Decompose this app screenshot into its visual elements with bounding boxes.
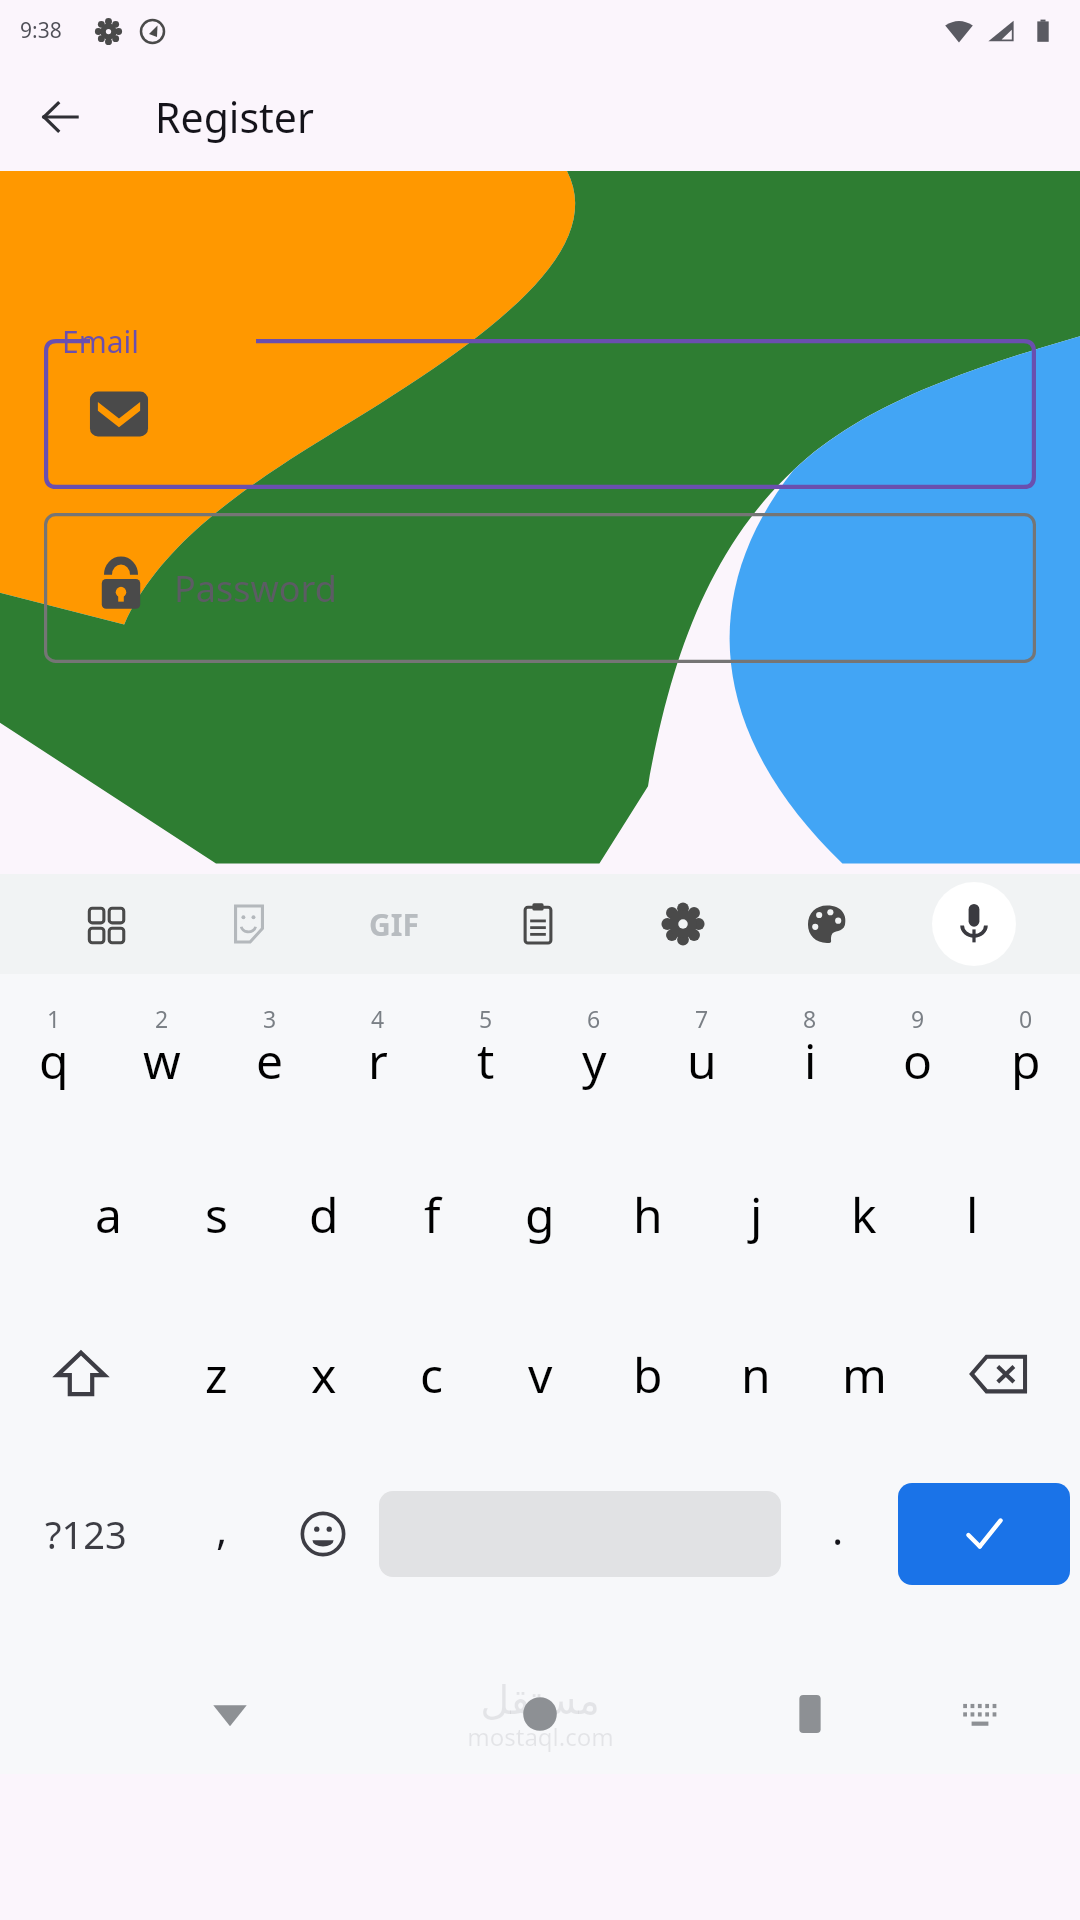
- button[interactable]: f: [378, 1134, 486, 1294]
- staticText: Email: [62, 321, 140, 362]
- button[interactable]: d: [270, 1134, 378, 1294]
- staticText: مستقل: [480, 1677, 600, 1724]
- button[interactable]: Emoji: [272, 1454, 373, 1614]
- staticText: z: [205, 1342, 228, 1407]
- staticText: 9:38: [20, 16, 62, 45]
- staticText: s: [205, 1182, 228, 1247]
- button[interactable]: ,: [171, 1454, 272, 1614]
- button[interactable]: Voice input: [932, 882, 1016, 966]
- staticText: y: [582, 1028, 607, 1093]
- button[interactable]: Settings: [643, 884, 723, 964]
- staticText: r: [368, 1028, 388, 1093]
- staticText: n: [741, 1342, 771, 1407]
- button[interactable]: 5: [432, 974, 540, 1134]
- staticText: f: [424, 1182, 441, 1247]
- staticText: d: [309, 1182, 339, 1247]
- staticText: Password: [174, 564, 337, 613]
- staticText: ?123: [45, 1508, 127, 1560]
- button[interactable]: k: [810, 1134, 918, 1294]
- staticText: b: [633, 1342, 663, 1407]
- staticText: t: [477, 1028, 495, 1093]
- button[interactable]: a: [54, 1134, 162, 1294]
- staticText: 8: [803, 1003, 817, 1034]
- staticText: 0: [1019, 1003, 1033, 1034]
- button[interactable]: b: [594, 1294, 702, 1454]
- button[interactable]: Clipboard: [498, 884, 578, 964]
- button[interactable]: 1: [0, 974, 108, 1134]
- staticText: i: [804, 1028, 817, 1093]
- button[interactable]: [44, 339, 1036, 489]
- button[interactable]: Apps: [65, 884, 145, 964]
- staticText: GIF: [369, 904, 419, 945]
- staticText: h: [633, 1182, 663, 1247]
- button[interactable]: Register: [340, 923, 740, 1041]
- button[interactable]: 6: [540, 974, 648, 1134]
- staticText: 9: [911, 1003, 925, 1034]
- button[interactable]: l: [918, 1134, 1026, 1294]
- button[interactable]: .: [787, 1454, 888, 1614]
- button[interactable]: 4: [324, 974, 432, 1134]
- staticText: 2: [155, 1003, 169, 1034]
- staticText: 4: [371, 1003, 385, 1034]
- staticText: Register: [155, 89, 314, 145]
- staticText: u: [687, 1028, 717, 1093]
- staticText: 5: [479, 1003, 493, 1034]
- button[interactable]: s: [162, 1134, 270, 1294]
- staticText: 6: [587, 1003, 601, 1034]
- button[interactable]: Recents: [770, 1674, 850, 1754]
- staticText: .: [832, 1500, 844, 1557]
- button[interactable]: j: [702, 1134, 810, 1294]
- staticText: mostaql.com: [467, 1720, 614, 1753]
- button[interactable]: GIF: [354, 884, 434, 964]
- staticText: 3: [263, 1003, 277, 1034]
- button[interactable]: Home: [500, 1674, 580, 1754]
- button[interactable]: 2: [108, 974, 216, 1134]
- staticText: c: [420, 1342, 444, 1407]
- button[interactable]: Back: [22, 79, 98, 155]
- button[interactable]: v: [486, 1294, 594, 1454]
- button[interactable]: Theme: [787, 884, 867, 964]
- staticText: k: [851, 1182, 877, 1247]
- button[interactable]: Enter: [898, 1483, 1070, 1585]
- button[interactable]: Switch keyboard: [940, 1674, 1020, 1754]
- button[interactable]: Password: [44, 513, 1036, 663]
- button[interactable]: 7: [648, 974, 756, 1134]
- staticText: v: [528, 1342, 553, 1407]
- staticText: e: [256, 1028, 284, 1093]
- button[interactable]: m: [810, 1294, 918, 1454]
- button[interactable]: 8: [756, 974, 864, 1134]
- button[interactable]: h: [594, 1134, 702, 1294]
- staticText: w: [143, 1028, 181, 1093]
- button[interactable]: 9: [864, 974, 972, 1134]
- staticText: o: [903, 1028, 933, 1093]
- staticText: q: [39, 1028, 69, 1093]
- staticText: ,: [216, 1500, 228, 1557]
- button[interactable]: c: [378, 1294, 486, 1454]
- button[interactable]: ?123: [0, 1454, 171, 1614]
- button[interactable]: Stickers: [209, 884, 289, 964]
- staticText: l: [966, 1182, 979, 1247]
- staticText: x: [311, 1342, 337, 1407]
- button[interactable]: x: [270, 1294, 378, 1454]
- staticText: m: [842, 1342, 887, 1407]
- button[interactable]: Backspace: [918, 1294, 1080, 1454]
- button[interactable]: 3: [216, 974, 324, 1134]
- staticText: a: [95, 1182, 122, 1247]
- staticText: j: [750, 1182, 763, 1247]
- button[interactable]: n: [702, 1294, 810, 1454]
- staticText: 1: [47, 1003, 61, 1034]
- button[interactable]: z: [162, 1294, 270, 1454]
- button[interactable]: Hide keyboard: [190, 1674, 270, 1754]
- button[interactable]: Shift: [0, 1294, 162, 1454]
- staticText: 7: [695, 1003, 709, 1034]
- staticText: g: [525, 1182, 555, 1247]
- staticText: p: [1011, 1028, 1041, 1093]
- button[interactable]: g: [486, 1134, 594, 1294]
- button[interactable]: 0: [972, 974, 1080, 1134]
